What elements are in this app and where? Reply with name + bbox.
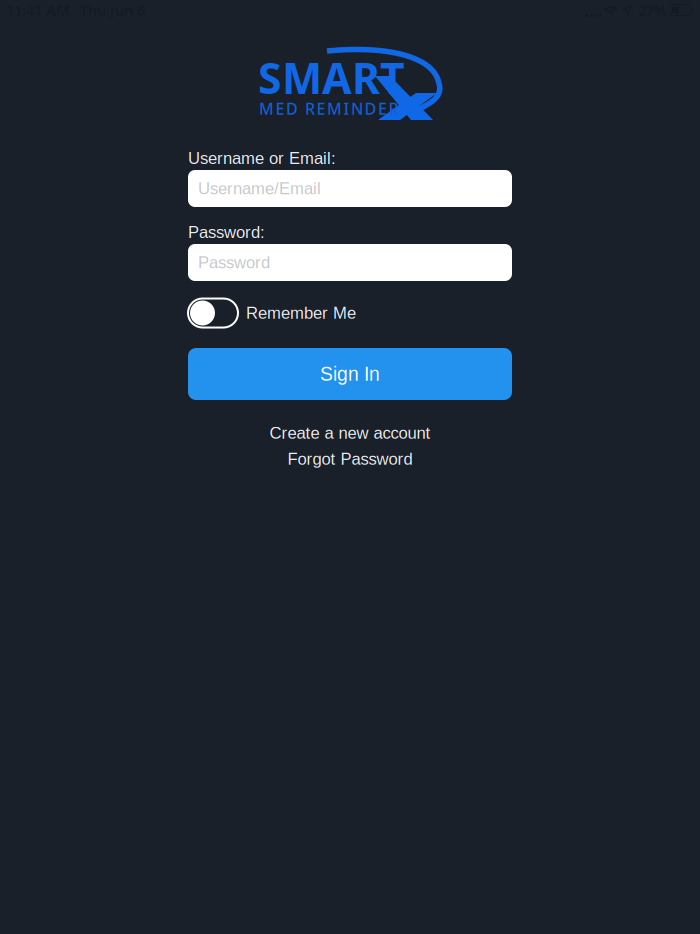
staticText: Forgot Password: [287, 450, 412, 468]
staticText: SMART: [258, 49, 405, 106]
button[interactable]: Remember Me: [188, 298, 512, 328]
staticText: Remember Me: [246, 304, 356, 322]
staticText: Create a new account: [269, 424, 430, 442]
button[interactable]: Forgot Password: [188, 447, 512, 471]
staticText: Username/Email: [198, 179, 321, 198]
staticText: Password: [198, 253, 270, 272]
button[interactable]: Create a new account: [188, 421, 512, 445]
staticText: Sign In: [320, 363, 380, 385]
staticText: Password:: [188, 223, 265, 242]
button[interactable]: Sign In: [188, 348, 512, 400]
staticText: Username or Email:: [188, 149, 336, 168]
staticText: MED REMINDER: [259, 98, 398, 119]
